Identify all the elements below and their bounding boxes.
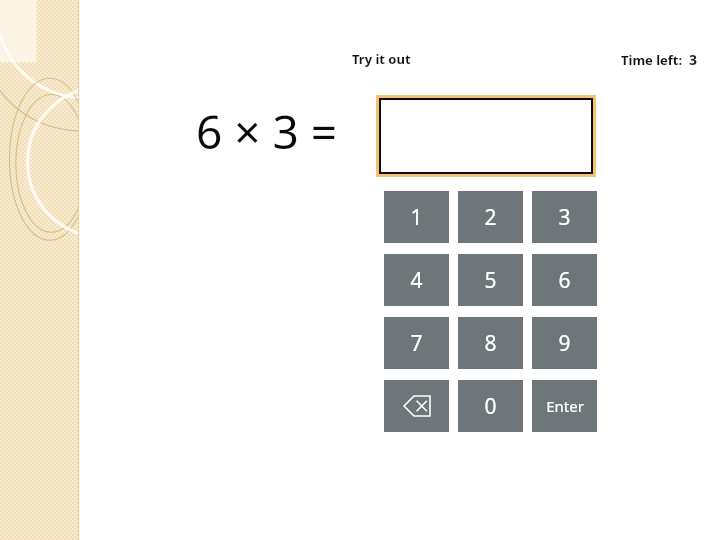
staticText: 1 [410,203,423,232]
staticText: 0 [484,392,497,421]
button[interactable]: 9 [532,317,597,369]
button[interactable]: 8 [458,317,523,369]
staticText: 3 [558,203,571,232]
staticText: 3 [689,50,698,69]
staticText: 2 [484,203,497,232]
staticText: 6 × 3 = [196,100,338,163]
staticText: Enter [546,396,584,416]
button[interactable]: 2 [458,191,523,243]
staticText: 5 [484,266,497,295]
button[interactable]: 3 [532,191,597,243]
button[interactable]: 1 [384,191,449,243]
button[interactable]: Enter [532,380,597,432]
staticText: 8 [484,329,497,358]
button[interactable]: 4 [384,254,449,306]
staticText: 7 [410,329,423,358]
staticText: 6 [558,266,571,295]
button[interactable]: Backspace [384,380,449,432]
button[interactable]: 0 [458,380,523,432]
staticText: 4 [410,266,423,295]
button[interactable]: 7 [384,317,449,369]
staticText: 9 [558,329,571,358]
staticText: Time left: [621,51,683,69]
button[interactable]: 5 [458,254,523,306]
staticText: Try it out [352,50,411,68]
button[interactable]: 6 [532,254,597,306]
